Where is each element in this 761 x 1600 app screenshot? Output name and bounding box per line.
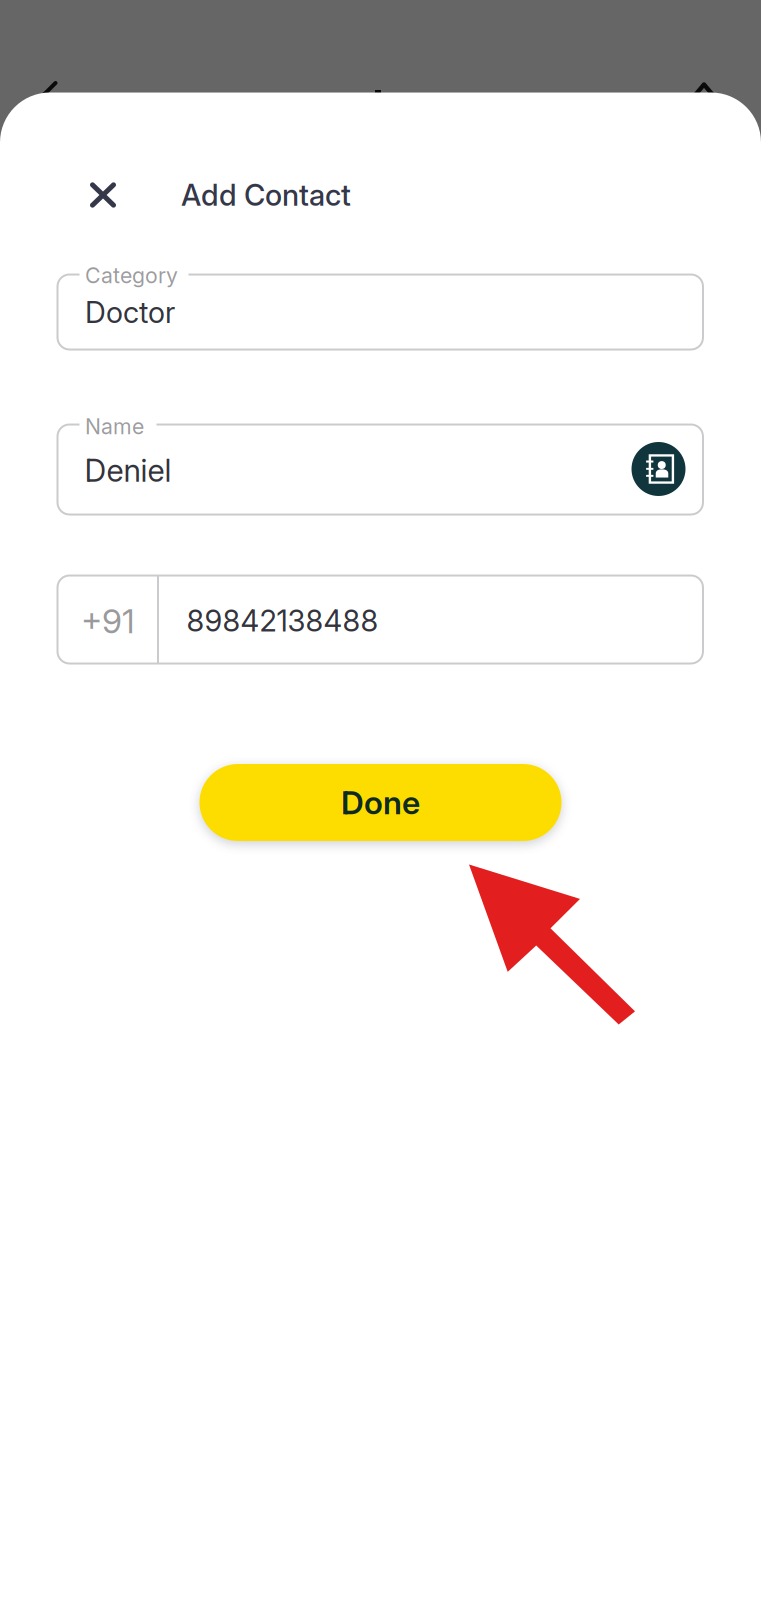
button[interactable]: Choose from contacts (631, 442, 685, 496)
staticText: Name (85, 413, 144, 439)
staticText: Deniel (84, 452, 171, 489)
staticText: +91 (81, 601, 135, 641)
staticText: Doctor (85, 294, 175, 330)
staticText: Category (85, 262, 178, 288)
button[interactable]: Close (67, 159, 139, 231)
button[interactable]: Done (199, 764, 561, 841)
staticText: Add Contact (181, 177, 351, 213)
staticText: Done (341, 783, 420, 822)
button[interactable]: Category (57, 274, 703, 349)
button[interactable]: Name (57, 424, 703, 514)
button[interactable]: +91 (57, 575, 703, 663)
staticText: 89842138488 (186, 603, 378, 638)
